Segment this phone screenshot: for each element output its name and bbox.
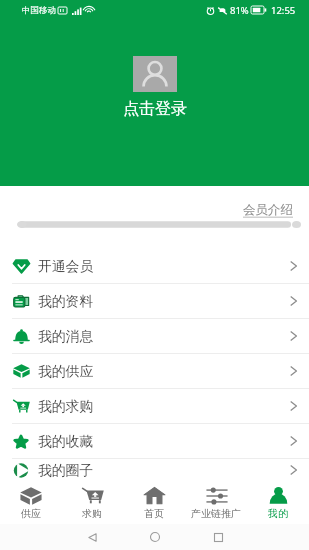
staticText: 中国移动 — [22, 5, 56, 16]
staticText: 12:55 — [271, 4, 296, 17]
button[interactable]: 返回 — [61, 524, 123, 550]
button[interactable]: 我的收藏 — [0, 424, 309, 459]
staticText: 我的求购 — [38, 398, 94, 415]
staticText: 产业链推广 — [191, 507, 241, 520]
staticText: 81% — [230, 4, 249, 17]
button[interactable]: 我的消息 — [0, 319, 309, 354]
staticText: 开通会员 — [38, 258, 94, 275]
button[interactable]: 开通会员 — [0, 249, 309, 284]
staticText: 我的 — [268, 507, 288, 520]
button[interactable]: 最近任务 — [187, 524, 249, 550]
staticText: 我的圈子 — [38, 462, 94, 479]
staticText: 我的资料 — [38, 293, 94, 310]
button[interactable]: 点击登录 — [123, 99, 187, 119]
button[interactable]: 头像 — [133, 56, 177, 92]
button[interactable]: 我的资料 — [0, 284, 309, 319]
button[interactable]: 我的求购 — [0, 389, 309, 424]
button[interactable]: 产业链推广 — [185, 481, 247, 524]
button[interactable]: 我的圈子 — [0, 459, 309, 481]
staticText: 首页 — [144, 507, 164, 520]
button[interactable]: 会员介绍 — [243, 202, 309, 218]
button[interactable]: 首页 — [123, 481, 185, 524]
staticText: 我的收藏 — [38, 433, 94, 450]
staticText: 求购 — [82, 507, 102, 520]
button[interactable]: 供应 — [0, 481, 61, 524]
button[interactable]: 我的 — [247, 481, 309, 524]
button[interactable]: 主页 — [124, 524, 186, 550]
button[interactable]: 我的供应 — [0, 354, 309, 389]
staticText: 供应 — [21, 507, 41, 520]
staticText: 我的供应 — [38, 363, 94, 380]
button[interactable]: 求购 — [61, 481, 123, 524]
staticText: 我的消息 — [38, 328, 94, 345]
